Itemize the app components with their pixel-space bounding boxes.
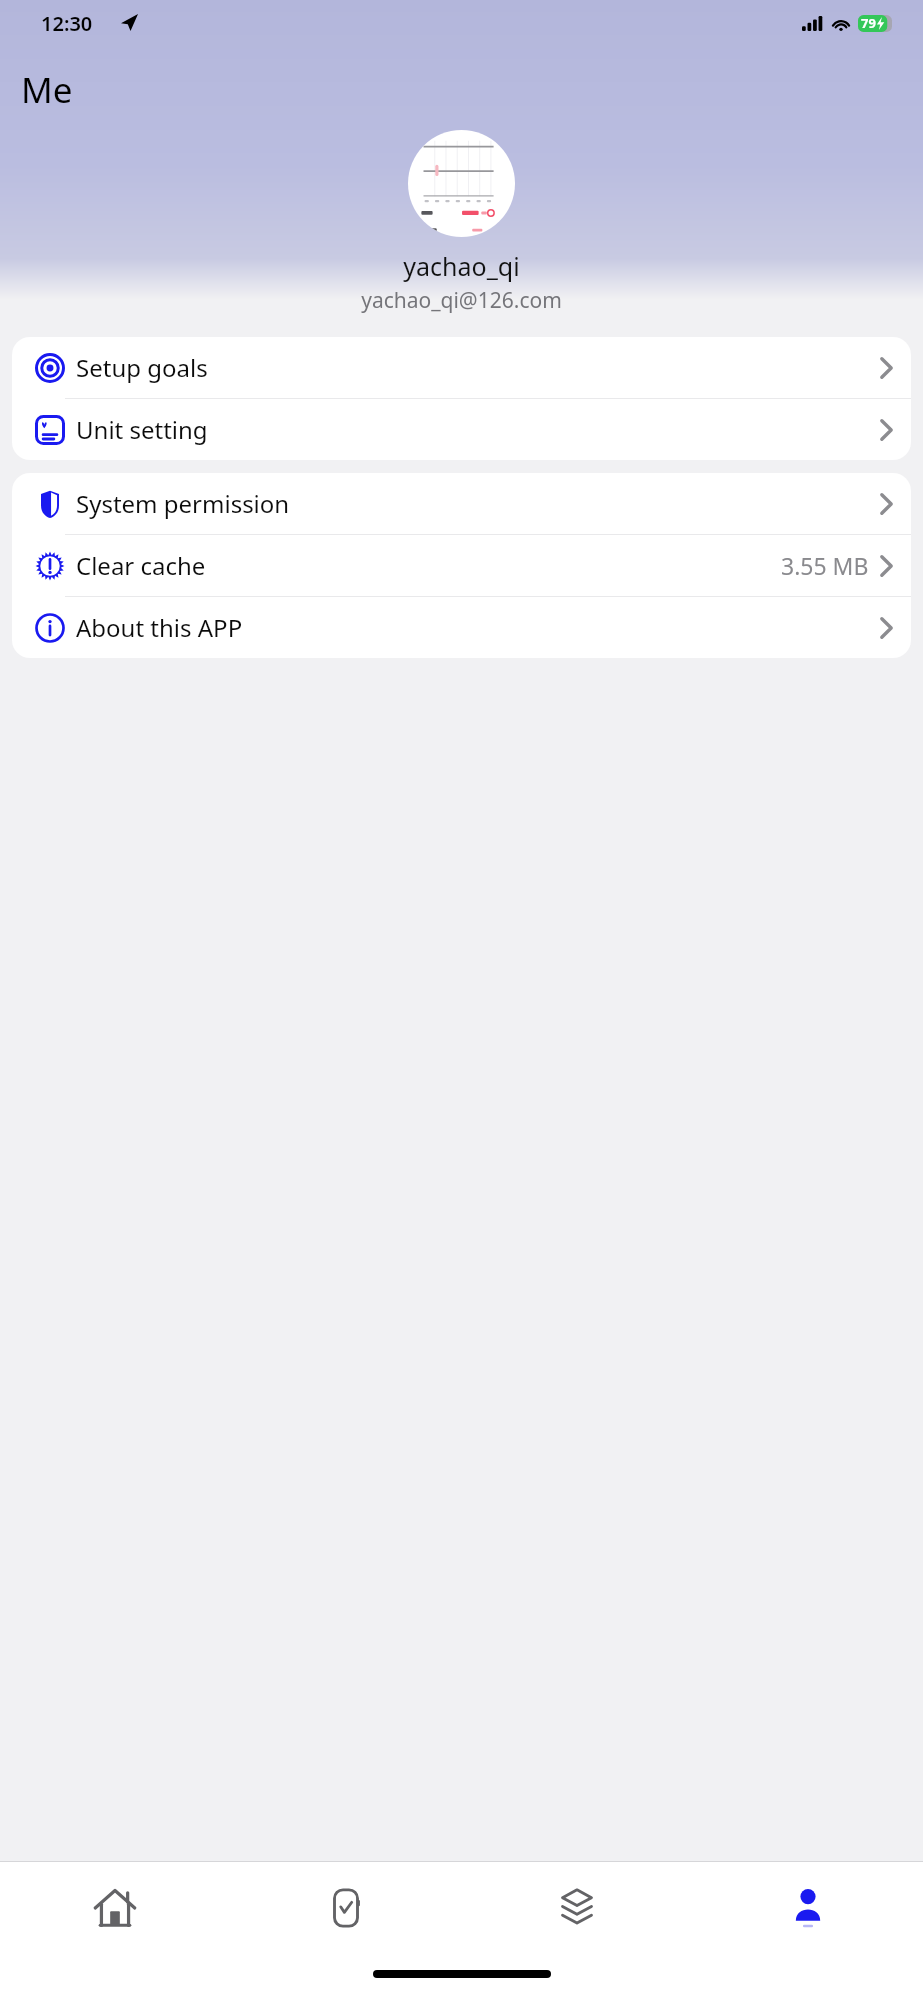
staticText: 79	[861, 14, 876, 32]
staticText: yachao_qi	[0, 249, 923, 283]
staticText: About this APP	[76, 611, 243, 644]
staticText: 12:30	[41, 10, 93, 37]
staticText: Me	[21, 66, 73, 114]
button[interactable]: Home	[0, 1862, 230, 1954]
staticText: System permission	[76, 487, 290, 520]
button[interactable]: About this APP	[12, 597, 911, 658]
button[interactable]: Clear cache	[12, 535, 911, 596]
button[interactable]: Me	[692, 1862, 923, 1954]
button[interactable]: Data	[461, 1862, 692, 1954]
staticText: Setup goals	[76, 351, 208, 384]
staticText: 3.55 MB	[781, 550, 869, 581]
button[interactable]: Devices	[230, 1862, 461, 1954]
staticText: yachao_qi@126.com	[0, 286, 923, 315]
button[interactable]: Setup goals	[12, 337, 911, 398]
button[interactable]: System permission	[12, 473, 911, 534]
button[interactable]: Unit setting	[12, 399, 911, 460]
staticText: Unit setting	[76, 413, 208, 446]
staticText: Clear cache	[76, 549, 206, 582]
